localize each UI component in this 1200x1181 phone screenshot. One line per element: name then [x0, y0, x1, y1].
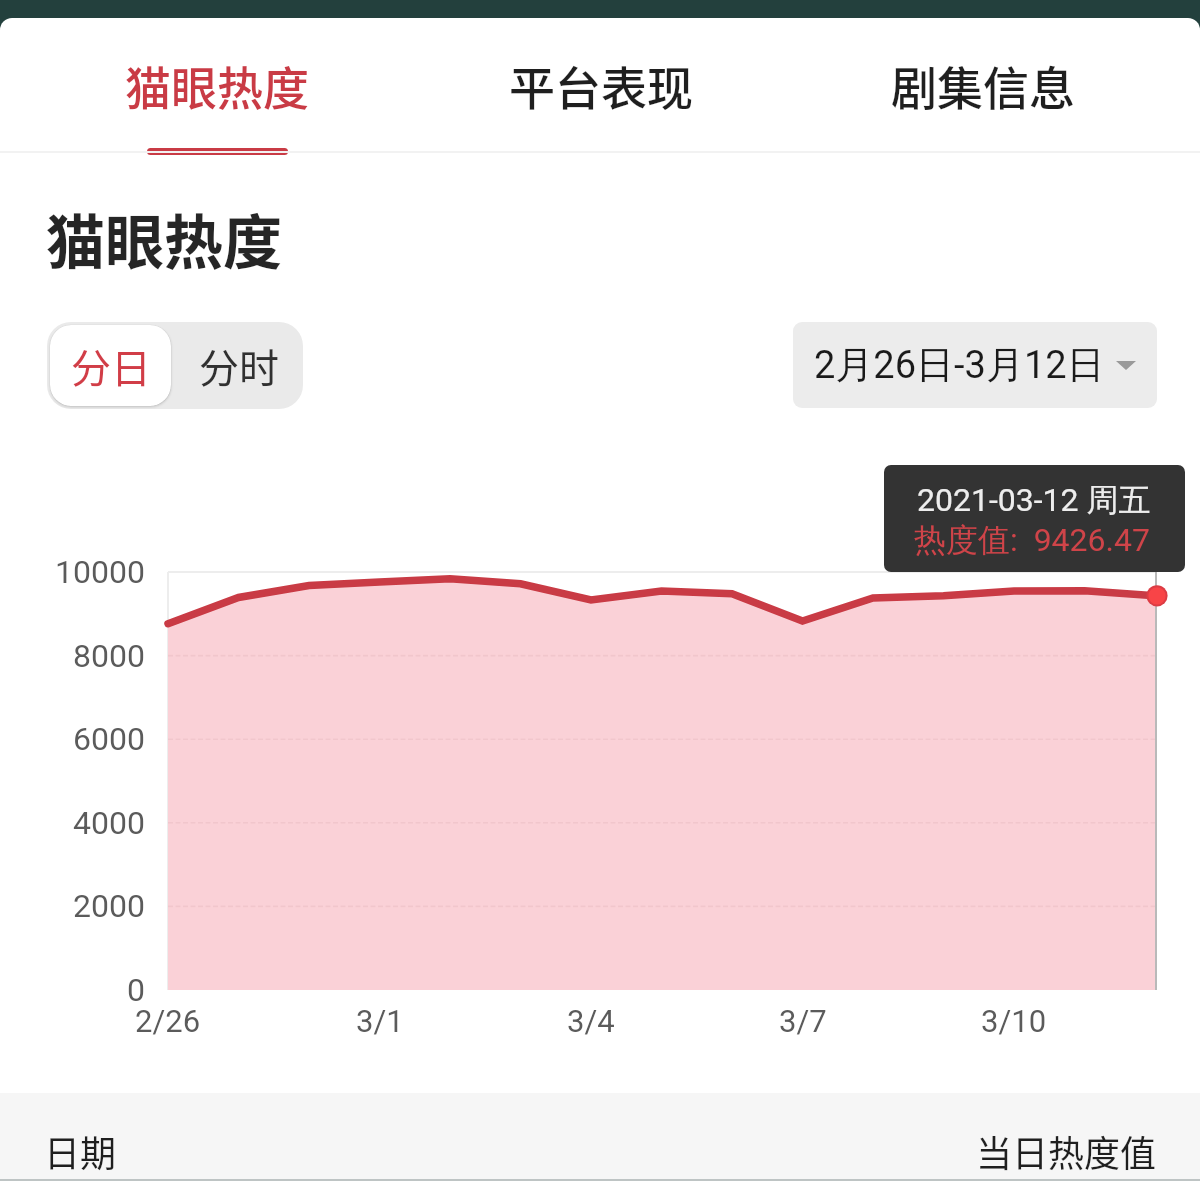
staticText: 当日热度值: [976, 1125, 1157, 1177]
button[interactable]: 剧集信息: [853, 18, 1113, 153]
staticText: 3/1: [356, 1003, 404, 1039]
staticText: 猫眼热度: [46, 196, 283, 281]
staticText: 6000: [73, 720, 145, 758]
staticText: 0: [127, 971, 145, 1009]
staticText: 4000: [73, 804, 145, 842]
staticText: 3/4: [567, 1003, 615, 1039]
staticText: 2000: [73, 887, 145, 925]
staticText: 日期: [44, 1125, 117, 1177]
staticText: 猫眼热度: [125, 52, 309, 119]
button[interactable]: 分日: [50, 325, 171, 406]
staticText: 分日: [71, 337, 151, 395]
button[interactable]: 平台表现: [471, 18, 731, 153]
staticText: 10000: [55, 553, 145, 591]
staticText: 8000: [73, 637, 145, 675]
staticText: 2021-03-12 周五: [917, 480, 1151, 520]
staticText: 剧集信息: [891, 52, 1075, 119]
button[interactable]: 日期: [0, 1093, 1200, 1181]
staticText: 2/26: [135, 1003, 201, 1039]
button[interactable]: 分时: [174, 322, 303, 409]
staticText: 3/7: [779, 1003, 827, 1039]
staticText: 3/10: [981, 1003, 1047, 1039]
button[interactable]: 2月26日-3月12日: [793, 322, 1157, 408]
staticText: 热度值: 9426.47: [914, 520, 1150, 560]
button[interactable]: 猫眼热度: [87, 18, 347, 153]
staticText: 平台表现: [509, 52, 693, 119]
staticText: 分时: [199, 337, 279, 395]
staticText: 2月26日-3月12日: [814, 341, 1105, 389]
other: Choose date range: [1116, 361, 1136, 370]
